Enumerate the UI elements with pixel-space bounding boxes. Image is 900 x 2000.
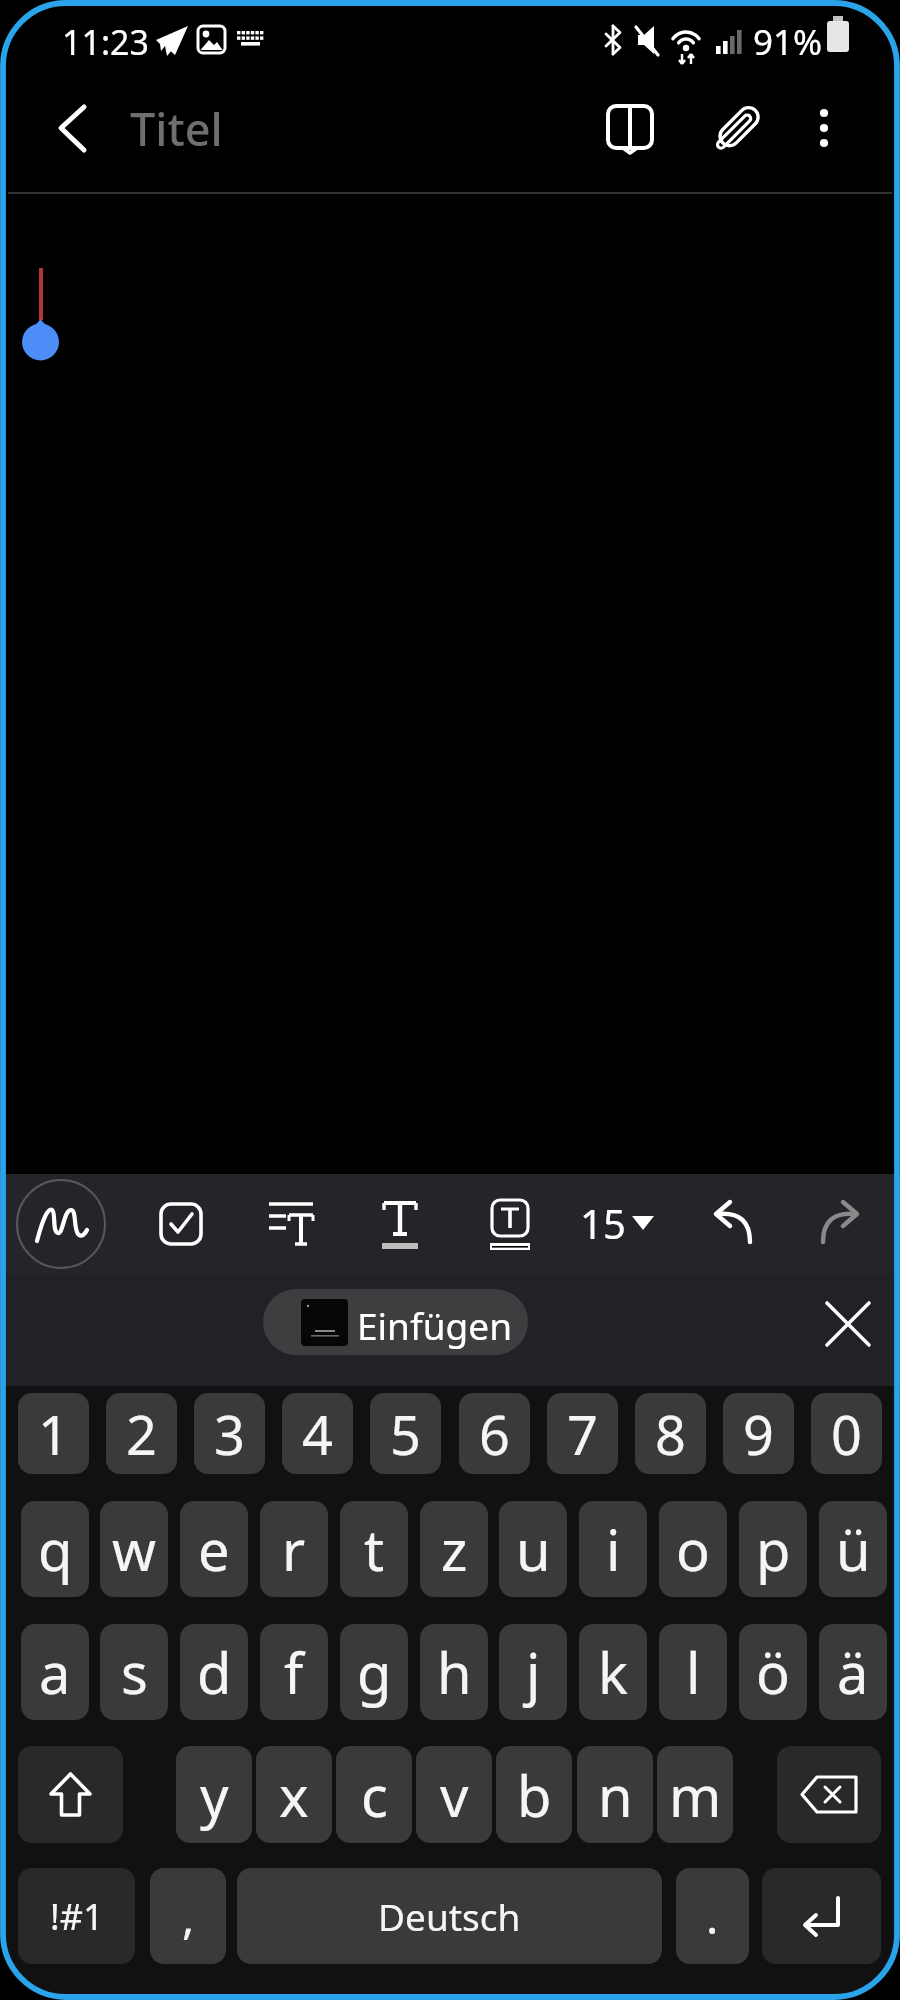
- button[interactable]: 9: [723, 1393, 794, 1474]
- button[interactable]: 1: [18, 1393, 89, 1474]
- staticText: !#1: [50, 1892, 104, 1941]
- button[interactable]: a: [21, 1624, 89, 1720]
- staticText: i: [606, 1511, 621, 1587]
- staticText: y: [200, 1757, 229, 1833]
- button[interactable]: j: [499, 1624, 567, 1720]
- staticText: 5: [390, 1397, 421, 1471]
- button[interactable]: [480, 1194, 540, 1254]
- button[interactable]: .: [676, 1868, 749, 1964]
- button[interactable]: k: [579, 1624, 647, 1720]
- button[interactable]: [40, 95, 106, 161]
- staticText: 0: [831, 1397, 862, 1471]
- staticText: 8: [655, 1397, 686, 1471]
- button[interactable]: [762, 1868, 881, 1964]
- button[interactable]: 0: [811, 1393, 882, 1474]
- staticText: s: [121, 1634, 148, 1710]
- staticText: a: [39, 1634, 71, 1710]
- button[interactable]: [818, 1294, 878, 1354]
- button[interactable]: 7: [547, 1393, 618, 1474]
- staticText: g: [357, 1634, 392, 1710]
- button[interactable]: q: [21, 1501, 89, 1597]
- button[interactable]: e: [180, 1501, 248, 1597]
- staticText: 2: [126, 1397, 157, 1471]
- staticText: l: [686, 1634, 701, 1710]
- button[interactable]: [261, 1194, 321, 1254]
- button[interactable]: g: [340, 1624, 408, 1720]
- staticText: o: [676, 1511, 710, 1587]
- staticText: ,: [182, 1885, 195, 1948]
- staticText: j: [526, 1634, 541, 1710]
- button[interactable]: 6: [459, 1393, 530, 1474]
- button[interactable]: [705, 95, 771, 161]
- button[interactable]: c: [336, 1746, 412, 1843]
- staticText: p: [756, 1511, 791, 1587]
- staticText: 3: [214, 1397, 245, 1471]
- button[interactable]: s: [100, 1624, 168, 1720]
- button[interactable]: 15: [570, 1192, 665, 1256]
- staticText: t: [364, 1511, 385, 1587]
- staticText: Deutsch: [378, 1891, 521, 1941]
- staticText: 1: [38, 1397, 69, 1471]
- button[interactable]: ,: [150, 1868, 226, 1964]
- staticText: v: [440, 1757, 469, 1833]
- button[interactable]: l: [659, 1624, 727, 1720]
- button[interactable]: 8: [635, 1393, 706, 1474]
- button[interactable]: i: [579, 1501, 647, 1597]
- button[interactable]: x: [256, 1746, 332, 1843]
- staticText: Titel: [130, 98, 223, 159]
- button[interactable]: [795, 95, 855, 161]
- staticText: 7: [567, 1397, 598, 1471]
- staticText: 9: [743, 1397, 774, 1471]
- staticText: x: [279, 1757, 309, 1833]
- button[interactable]: f: [260, 1624, 328, 1720]
- button[interactable]: 4: [282, 1393, 353, 1474]
- button[interactable]: t: [340, 1501, 408, 1597]
- button[interactable]: [16, 1179, 106, 1269]
- staticText: 11:23: [62, 19, 149, 65]
- staticText: q: [38, 1511, 73, 1587]
- staticText: w: [112, 1511, 157, 1587]
- button[interactable]: n: [577, 1746, 653, 1843]
- staticText: m: [669, 1757, 722, 1833]
- button[interactable]: w: [100, 1501, 168, 1597]
- staticText: .: [706, 1885, 719, 1948]
- button[interactable]: o: [659, 1501, 727, 1597]
- button[interactable]: h: [420, 1624, 488, 1720]
- staticText: f: [284, 1634, 304, 1710]
- button[interactable]: r: [260, 1501, 328, 1597]
- button[interactable]: u: [499, 1501, 567, 1597]
- staticText: b: [517, 1757, 552, 1833]
- button[interactable]: [700, 1194, 760, 1254]
- staticText: ö: [756, 1634, 790, 1710]
- button[interactable]: [597, 95, 663, 161]
- button[interactable]: b: [496, 1746, 572, 1843]
- staticText: Einfügen: [357, 1300, 513, 1350]
- button[interactable]: [813, 1194, 873, 1254]
- button[interactable]: [777, 1746, 881, 1843]
- button[interactable]: !#1: [18, 1868, 135, 1964]
- staticText: c: [361, 1757, 388, 1833]
- button[interactable]: [151, 1194, 211, 1254]
- button[interactable]: 2: [106, 1393, 177, 1474]
- button[interactable]: ü: [819, 1501, 887, 1597]
- staticText: 4: [302, 1397, 333, 1471]
- button[interactable]: ö: [739, 1624, 807, 1720]
- button[interactable]: y: [176, 1746, 252, 1843]
- staticText: k: [598, 1634, 628, 1710]
- button[interactable]: m: [657, 1746, 733, 1843]
- button[interactable]: Einfügen: [263, 1289, 528, 1355]
- button[interactable]: 5: [370, 1393, 441, 1474]
- button[interactable]: 3: [194, 1393, 265, 1474]
- button[interactable]: [18, 1746, 123, 1843]
- button[interactable]: v: [416, 1746, 492, 1843]
- staticText: ä: [837, 1634, 869, 1710]
- staticText: h: [437, 1634, 472, 1710]
- staticText: d: [197, 1634, 232, 1710]
- button[interactable]: p: [739, 1501, 807, 1597]
- staticText: ü: [836, 1511, 871, 1587]
- button[interactable]: d: [180, 1624, 248, 1720]
- button[interactable]: Deutsch: [237, 1868, 662, 1964]
- button[interactable]: ä: [819, 1624, 887, 1720]
- button[interactable]: z: [420, 1501, 488, 1597]
- button[interactable]: [370, 1194, 430, 1254]
